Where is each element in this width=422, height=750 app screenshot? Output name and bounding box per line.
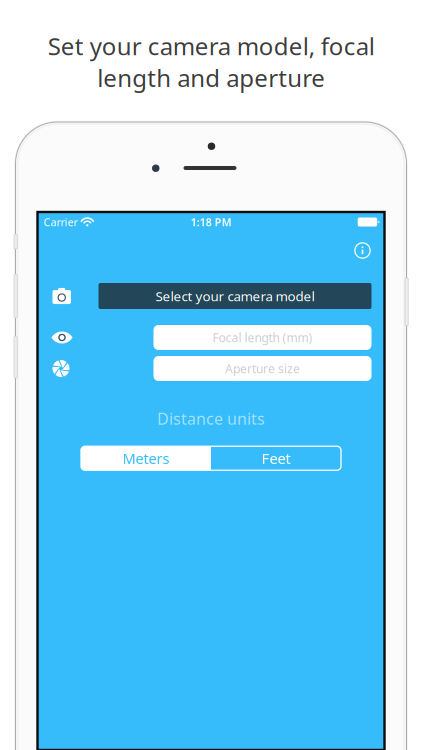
button[interactable]: Info: [347, 232, 377, 269]
button[interactable]: Meters: [81, 446, 211, 470]
staticText: Select your camera model: [155, 287, 314, 305]
staticText: Carrier: [43, 215, 77, 229]
staticText: Distance units: [157, 408, 265, 429]
staticText: Focal length (mm): [212, 329, 312, 345]
staticText: Aperture size: [225, 360, 300, 376]
staticText: Feet: [261, 448, 290, 468]
button[interactable]: Select your camera model: [98, 283, 371, 309]
button[interactable]: Feet: [211, 446, 341, 470]
staticText: Meters: [122, 448, 169, 468]
staticText: Set your camera model, focal length and …: [47, 30, 374, 94]
staticText: 1:18 PM: [190, 215, 231, 229]
